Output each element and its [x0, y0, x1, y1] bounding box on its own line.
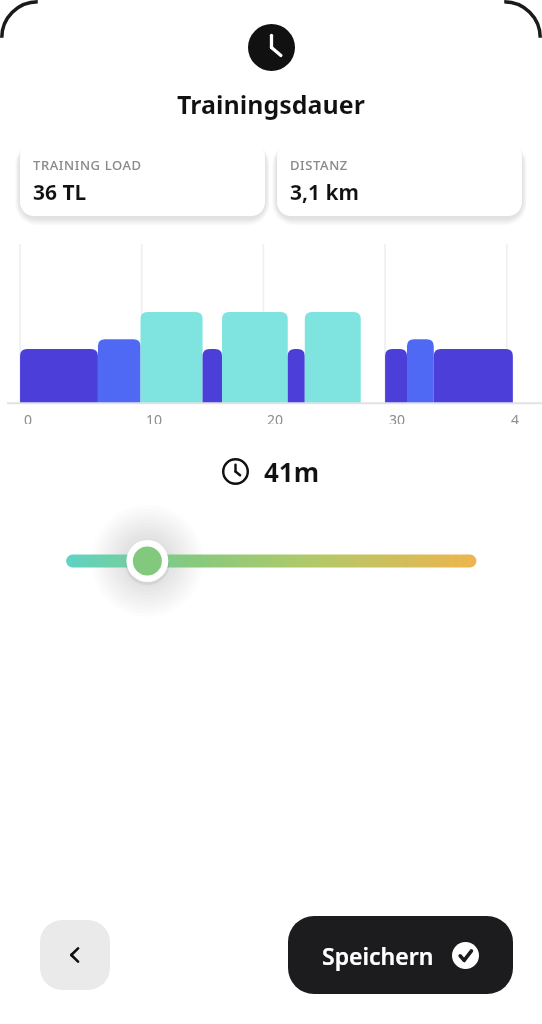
staticText: 3,1 km	[290, 178, 359, 207]
staticText: 10	[146, 410, 163, 424]
button[interactable]: Speichern	[288, 916, 513, 994]
button[interactable]: Dauer	[248, 24, 295, 71]
button[interactable]: Dauer einstellen	[0, 525, 542, 597]
button[interactable]: DISTANZ	[277, 143, 522, 216]
staticText: 30	[389, 410, 406, 424]
staticText: TRAINING LOAD	[33, 156, 142, 174]
staticText: DISTANZ	[290, 156, 348, 174]
staticText: 0	[24, 410, 33, 424]
button[interactable]: Zurück	[40, 920, 110, 990]
staticText: Speichern	[322, 940, 434, 971]
staticText: 20	[267, 410, 284, 424]
staticText: 41m	[264, 454, 320, 489]
button[interactable]: TRAINING LOAD	[20, 143, 265, 216]
staticText: Trainingsdauer	[0, 87, 542, 121]
staticText: 4	[511, 410, 520, 424]
staticText: 36 TL	[33, 178, 87, 207]
